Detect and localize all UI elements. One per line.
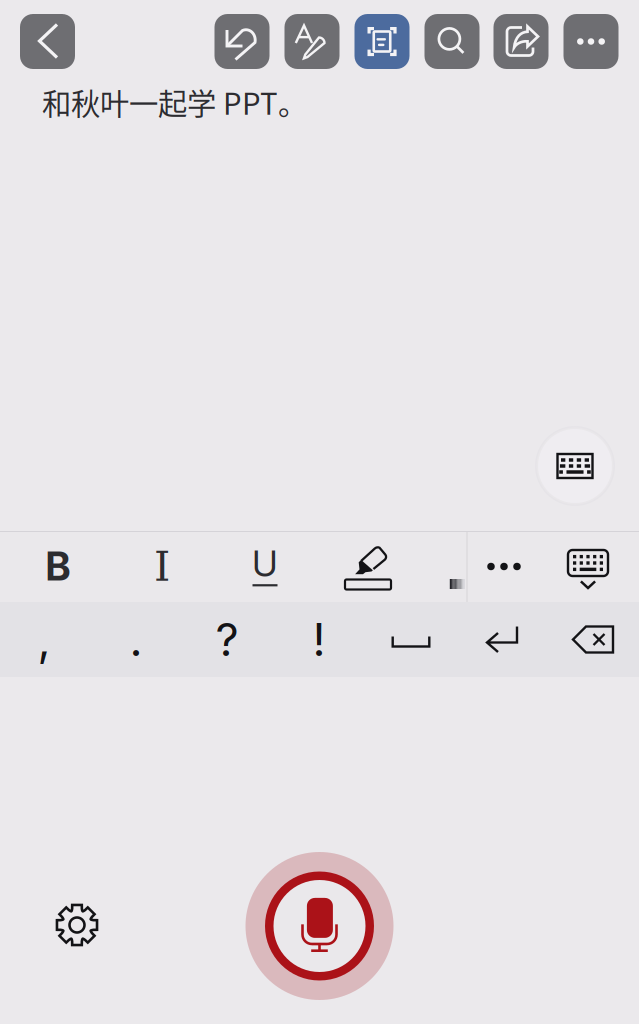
button[interactable]: Handwriting xyxy=(284,14,339,69)
staticText: I xyxy=(154,542,170,590)
button[interactable]: . xyxy=(93,602,179,677)
button[interactable]: ! xyxy=(276,602,362,677)
button[interactable]: Settings xyxy=(45,893,109,957)
button[interactable]: Space xyxy=(368,604,454,679)
button[interactable]: More xyxy=(563,14,618,69)
button[interactable]: Back xyxy=(20,14,75,69)
button[interactable]: Search xyxy=(424,14,479,69)
staticText: ! xyxy=(312,612,325,667)
button[interactable]: Record xyxy=(244,851,394,1001)
button[interactable]: Return xyxy=(459,602,545,677)
staticText: . xyxy=(129,612,142,667)
button[interactable]: Share xyxy=(493,14,548,69)
button[interactable]: Highlighter xyxy=(320,531,420,602)
button[interactable]: Delete xyxy=(550,602,636,677)
staticText: B xyxy=(45,543,70,590)
staticText: , xyxy=(37,612,50,667)
button[interactable]: U xyxy=(215,529,315,600)
staticText: U xyxy=(252,542,278,585)
button[interactable]: , xyxy=(1,602,87,677)
button[interactable]: I xyxy=(112,531,212,602)
button[interactable]: ? xyxy=(184,602,270,677)
button[interactable]: Scan text xyxy=(354,14,409,69)
button[interactable]: Show keyboard xyxy=(535,426,615,506)
button[interactable]: Undo xyxy=(214,14,269,69)
button[interactable]: More formatting xyxy=(466,531,542,602)
button[interactable]: Hide keyboard xyxy=(550,534,626,605)
button[interactable]: B xyxy=(8,531,108,602)
staticText: 和秋叶一起学 PPT。 xyxy=(42,81,307,123)
staticText: ? xyxy=(215,612,238,667)
